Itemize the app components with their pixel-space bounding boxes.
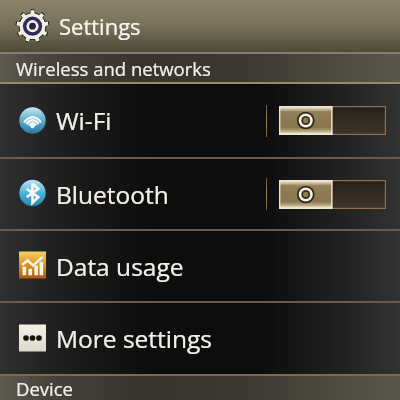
button[interactable]: Data usage <box>0 231 400 301</box>
button[interactable]: More settings <box>0 303 400 374</box>
staticText: Settings <box>59 11 141 41</box>
staticText: Device <box>16 376 73 400</box>
button[interactable]: Wi-Fi <box>0 84 400 157</box>
staticText: Wi-Fi <box>56 104 112 137</box>
staticText: More settings <box>56 322 212 355</box>
staticText: Data usage <box>56 250 184 283</box>
staticText: Wireless and networks <box>16 56 211 81</box>
staticText: Bluetooth <box>56 178 169 211</box>
button[interactable]: Toggle Bluetooth <box>279 180 386 209</box>
button[interactable]: Toggle Wi-Fi <box>279 106 386 135</box>
button[interactable]: Settings <box>0 0 400 52</box>
button[interactable]: Bluetooth <box>0 159 400 229</box>
